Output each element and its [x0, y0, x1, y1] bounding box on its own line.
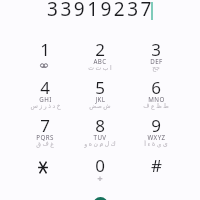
staticText: جح — [152, 64, 160, 71]
staticText: ا ب ت ث — [88, 64, 112, 72]
staticText: JKL — [95, 95, 106, 103]
staticText: WXYZ — [147, 133, 166, 141]
button[interactable]: Call — [93, 197, 108, 200]
button[interactable]: 5 JKL — [73, 69, 127, 107]
staticText: 6 — [151, 76, 161, 99]
staticText: 1 — [40, 38, 50, 61]
staticText: DEF — [150, 57, 163, 65]
staticText: 9 — [151, 114, 161, 137]
staticText: 8 — [95, 114, 105, 137]
staticText: غ ف ق — [36, 140, 54, 148]
staticText: GHI — [39, 95, 52, 103]
staticText: 7 — [40, 114, 50, 137]
button[interactable]: Dialled number 33919237 — [36, 0, 164, 22]
button[interactable]: 9 WXYZ — [129, 107, 183, 145]
staticText: TUV — [93, 133, 107, 141]
staticText: ى ي ة ء أ — [144, 140, 168, 148]
staticText: PQRS — [36, 133, 54, 141]
button[interactable]: 1 voicemail — [18, 31, 72, 69]
staticText: ك ل م ن ه و — [84, 140, 116, 148]
staticText: 33919237 — [47, 0, 154, 20]
staticText: 4 — [40, 76, 50, 99]
button[interactable]: 7 PQRS — [18, 107, 72, 145]
staticText: # — [151, 154, 162, 177]
staticText: 3 — [151, 38, 161, 61]
staticText: خ د ذ ر ز س — [30, 102, 61, 110]
button[interactable]: 3 DEF — [129, 31, 183, 69]
button[interactable]: 6 MNO — [129, 69, 183, 107]
button[interactable]: star — [18, 147, 72, 185]
staticText: 2 — [95, 38, 105, 61]
staticText: ش صض — [89, 102, 111, 110]
staticText: 0 — [95, 154, 105, 177]
staticText: MNO — [148, 95, 165, 103]
button[interactable]: 8 TUV — [73, 107, 127, 145]
staticText: ط ظ ع ف — [143, 102, 169, 110]
button[interactable]: pound — [129, 147, 183, 185]
button[interactable]: 4 GHI — [18, 69, 72, 107]
staticText: 5 — [95, 76, 105, 99]
staticText: ABC — [93, 57, 107, 65]
button[interactable]: 2 ABC — [73, 31, 127, 69]
button[interactable]: 0 plus — [73, 147, 127, 185]
